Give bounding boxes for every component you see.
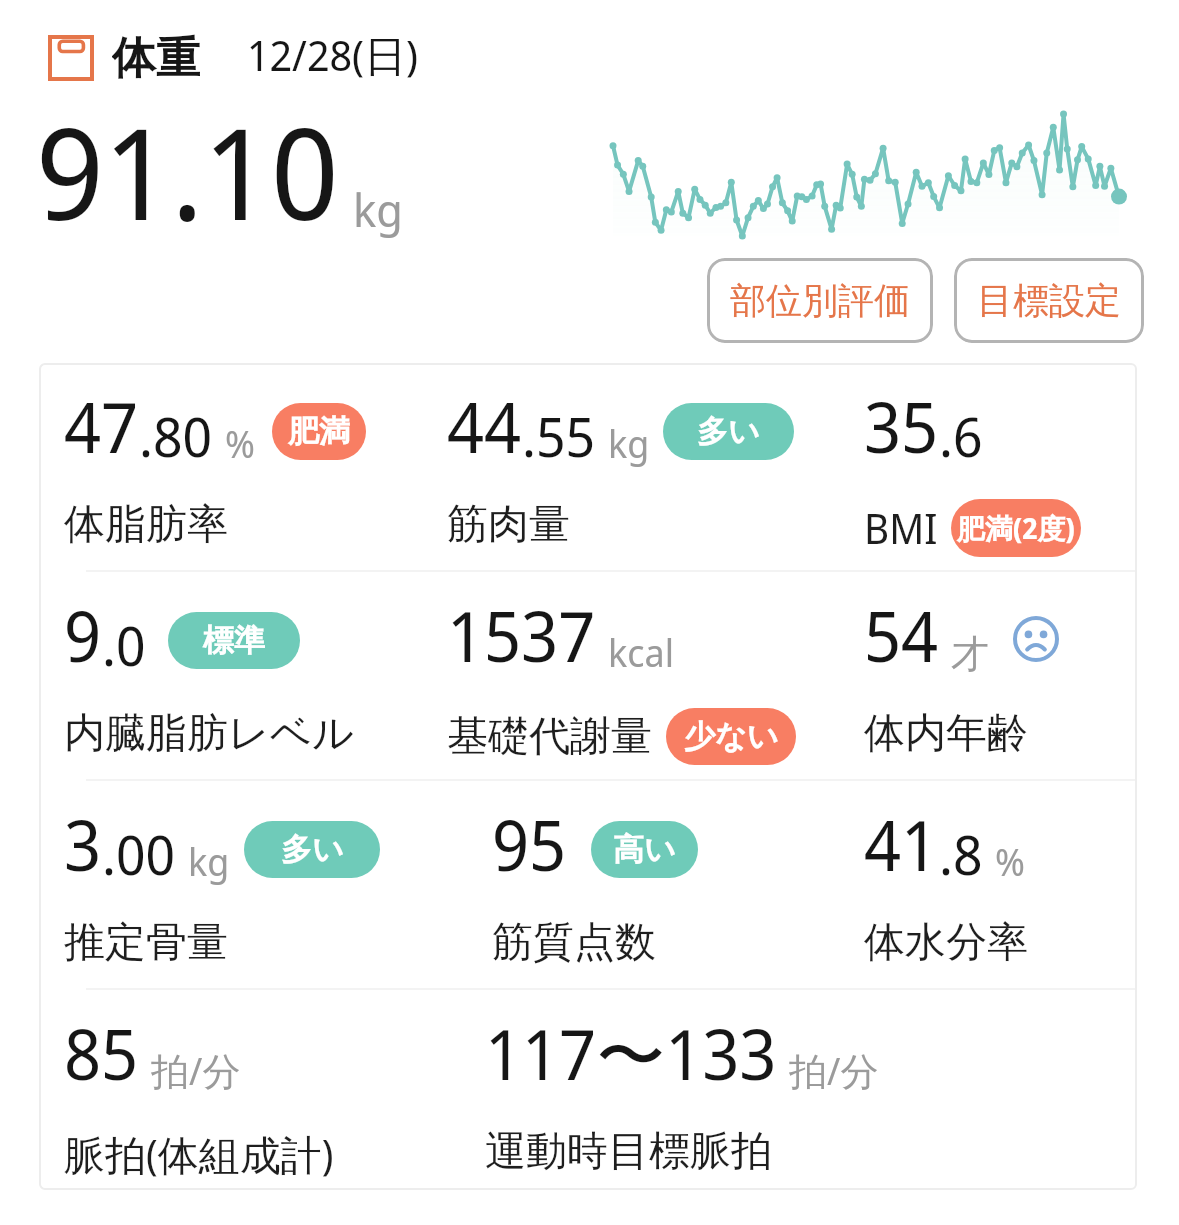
staticText: 部位別評価 (730, 278, 910, 323)
staticText: 95 (492, 797, 567, 891)
staticText: 1537 (447, 588, 596, 682)
staticText: 筋肉量 (447, 499, 570, 551)
staticText: .80 (139, 398, 213, 473)
staticText: .8 (939, 816, 983, 891)
staticText: BMI (864, 500, 938, 556)
button[interactable]: 部位別評価 (707, 258, 933, 343)
staticText: 筋質点数 (492, 917, 656, 969)
staticText: % (995, 835, 1025, 887)
staticText: 推定骨量 (64, 917, 228, 969)
staticText: 44 (447, 379, 522, 473)
staticText: 脈拍(体組成計) (64, 1126, 334, 1182)
staticText: 体内年齢 (864, 708, 1028, 760)
staticText: 47 (64, 379, 139, 473)
staticText: 肥満 (288, 412, 350, 451)
staticText: 85 (64, 1006, 139, 1100)
staticText: 拍/分 (151, 1044, 241, 1096)
staticText: .0 (102, 607, 146, 682)
staticText: 体重 (112, 31, 200, 81)
staticText: 肥満(2度) (957, 509, 1075, 547)
staticText: 9 (64, 588, 102, 682)
staticText: kg (188, 835, 230, 887)
staticText: 拍/分 (789, 1044, 879, 1096)
staticText: 目標設定 (977, 278, 1121, 323)
staticText: 117〜133 (485, 1006, 777, 1100)
staticText: 多い (697, 412, 760, 451)
staticText: 少ない (684, 717, 779, 756)
staticText: kg (608, 417, 650, 469)
staticText: 体脂肪率 (64, 499, 228, 551)
staticText: 標準 (203, 621, 265, 660)
staticText: 高い (613, 830, 676, 869)
staticText: 12/28(日) (247, 26, 418, 81)
staticText: 41 (864, 797, 939, 891)
staticText: .55 (522, 398, 596, 473)
staticText: kcal (608, 626, 675, 678)
staticText: .6 (939, 398, 983, 473)
staticText: .00 (102, 816, 176, 891)
staticText: 体水分率 (864, 917, 1028, 969)
staticText: 多い (281, 830, 344, 869)
staticText: 基礎代謝量 (447, 711, 652, 763)
staticText: 35 (864, 379, 939, 473)
staticText: 54 (864, 588, 939, 682)
staticText: 3 (64, 797, 102, 891)
button[interactable]: 目標設定 (954, 258, 1144, 343)
staticText: % (225, 417, 255, 469)
staticText: kg (353, 178, 404, 241)
staticText: 内臓脂肪レベル (64, 708, 354, 760)
other: Weight (48, 35, 98, 81)
staticText: 運動時目標脈拍 (485, 1126, 772, 1178)
staticText: 才 (951, 630, 989, 678)
staticText: 91.10 (36, 85, 339, 257)
